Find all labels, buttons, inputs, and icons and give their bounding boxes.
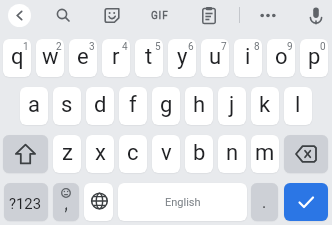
staticText: u	[209, 44, 222, 70]
button[interactable]: h	[185, 87, 213, 125]
staticText: a	[28, 92, 40, 118]
button[interactable]: x	[86, 135, 114, 173]
staticText: i	[245, 44, 251, 70]
button[interactable]: Backspace	[284, 135, 328, 173]
button[interactable]: l	[284, 87, 312, 125]
staticText: e	[77, 44, 89, 70]
button[interactable]: Stickers	[96, 0, 128, 31]
staticText: 3	[89, 41, 95, 53]
button[interactable]: w	[36, 39, 64, 77]
staticText: y	[177, 44, 188, 70]
button[interactable]: Back	[8, 4, 31, 27]
button[interactable]: Clipboard	[193, 0, 225, 31]
button[interactable]: j	[218, 87, 246, 125]
staticText: j	[229, 92, 235, 118]
staticText: GIF	[151, 10, 169, 22]
button[interactable]: Shift	[3, 135, 48, 173]
button[interactable]: u	[201, 39, 229, 77]
button[interactable]: GIF	[144, 0, 176, 31]
button[interactable]: Voice input	[300, 0, 332, 31]
staticText: 9	[287, 41, 293, 53]
button[interactable]: z	[53, 135, 81, 173]
staticText: r	[112, 44, 120, 70]
staticText: c	[127, 140, 139, 166]
staticText: t	[145, 44, 153, 70]
button[interactable]: g	[152, 87, 180, 125]
button[interactable]: o	[267, 39, 295, 77]
button[interactable]: Change language	[84, 183, 113, 221]
button[interactable]: b	[185, 135, 213, 173]
staticText: 5	[155, 41, 161, 53]
button[interactable]: Symbols	[4, 183, 48, 221]
button[interactable]: Space	[118, 183, 247, 221]
staticText: x	[95, 140, 106, 166]
button[interactable]: k	[251, 87, 279, 125]
staticText: s	[61, 92, 73, 118]
button[interactable]: Emoji and comma	[53, 183, 79, 221]
button[interactable]: a	[20, 87, 48, 125]
staticText: h	[193, 92, 206, 118]
staticText: 6	[188, 41, 194, 53]
staticText: w	[42, 44, 59, 70]
staticText: f	[129, 92, 137, 118]
button[interactable]: p	[300, 39, 328, 77]
staticText: English	[165, 196, 201, 209]
button[interactable]: c	[119, 135, 147, 173]
staticText: 4	[122, 41, 128, 53]
staticText: d	[94, 92, 107, 118]
staticText: b	[193, 140, 206, 166]
button[interactable]: d	[86, 87, 114, 125]
button[interactable]: t	[135, 39, 163, 77]
button[interactable]: Enter	[284, 183, 328, 221]
staticText: 8	[254, 41, 260, 53]
staticText: v	[161, 140, 172, 166]
staticText: ?123	[9, 195, 41, 212]
staticText: .	[262, 193, 267, 212]
staticText: 7	[221, 41, 227, 53]
button[interactable]: Period	[251, 183, 278, 221]
button[interactable]: f	[119, 87, 147, 125]
button[interactable]: v	[152, 135, 180, 173]
button[interactable]: m	[251, 135, 279, 173]
button[interactable]: y	[168, 39, 196, 77]
button[interactable]: q	[3, 39, 31, 77]
staticText: n	[226, 140, 239, 166]
button[interactable]: s	[53, 87, 81, 125]
staticText: g	[160, 92, 173, 118]
staticText: q	[11, 44, 24, 70]
staticText: l	[295, 92, 301, 118]
button[interactable]: r	[102, 39, 130, 77]
staticText: 0	[320, 41, 326, 53]
staticText: k	[259, 92, 271, 118]
button[interactable]: i	[234, 39, 262, 77]
staticText: 2	[56, 41, 62, 53]
button[interactable]: Search	[47, 0, 79, 31]
button[interactable]: n	[218, 135, 246, 173]
staticText: z	[62, 140, 73, 166]
button[interactable]: e	[69, 39, 97, 77]
staticText: p	[308, 44, 321, 70]
staticText: 1	[23, 41, 29, 53]
staticText: o	[275, 44, 288, 70]
button[interactable]: More options	[252, 0, 284, 31]
staticText: m	[255, 140, 275, 166]
